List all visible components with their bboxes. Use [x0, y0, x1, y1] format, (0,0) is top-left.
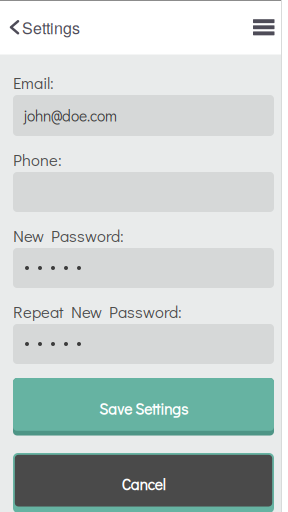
button[interactable]: Cancel	[13, 453, 274, 512]
staticText: New Password:	[13, 225, 124, 246]
button[interactable]: john@doe.com	[13, 95, 274, 136]
staticText: Phone:	[13, 149, 62, 170]
staticText: Cancel	[121, 474, 165, 494]
button[interactable]: Settings	[0, 0, 94, 54]
staticText: Save Settings	[99, 398, 188, 419]
button[interactable]: Save Settings	[13, 378, 274, 435]
button[interactable]	[13, 324, 274, 364]
staticText: Email:	[13, 72, 54, 93]
staticText: john@doe.com	[24, 105, 117, 126]
staticText: Settings	[22, 16, 80, 39]
button[interactable]: Menu	[239, 0, 288, 54]
staticText: Repeat New Password:	[13, 301, 182, 322]
button[interactable]	[13, 248, 274, 288]
